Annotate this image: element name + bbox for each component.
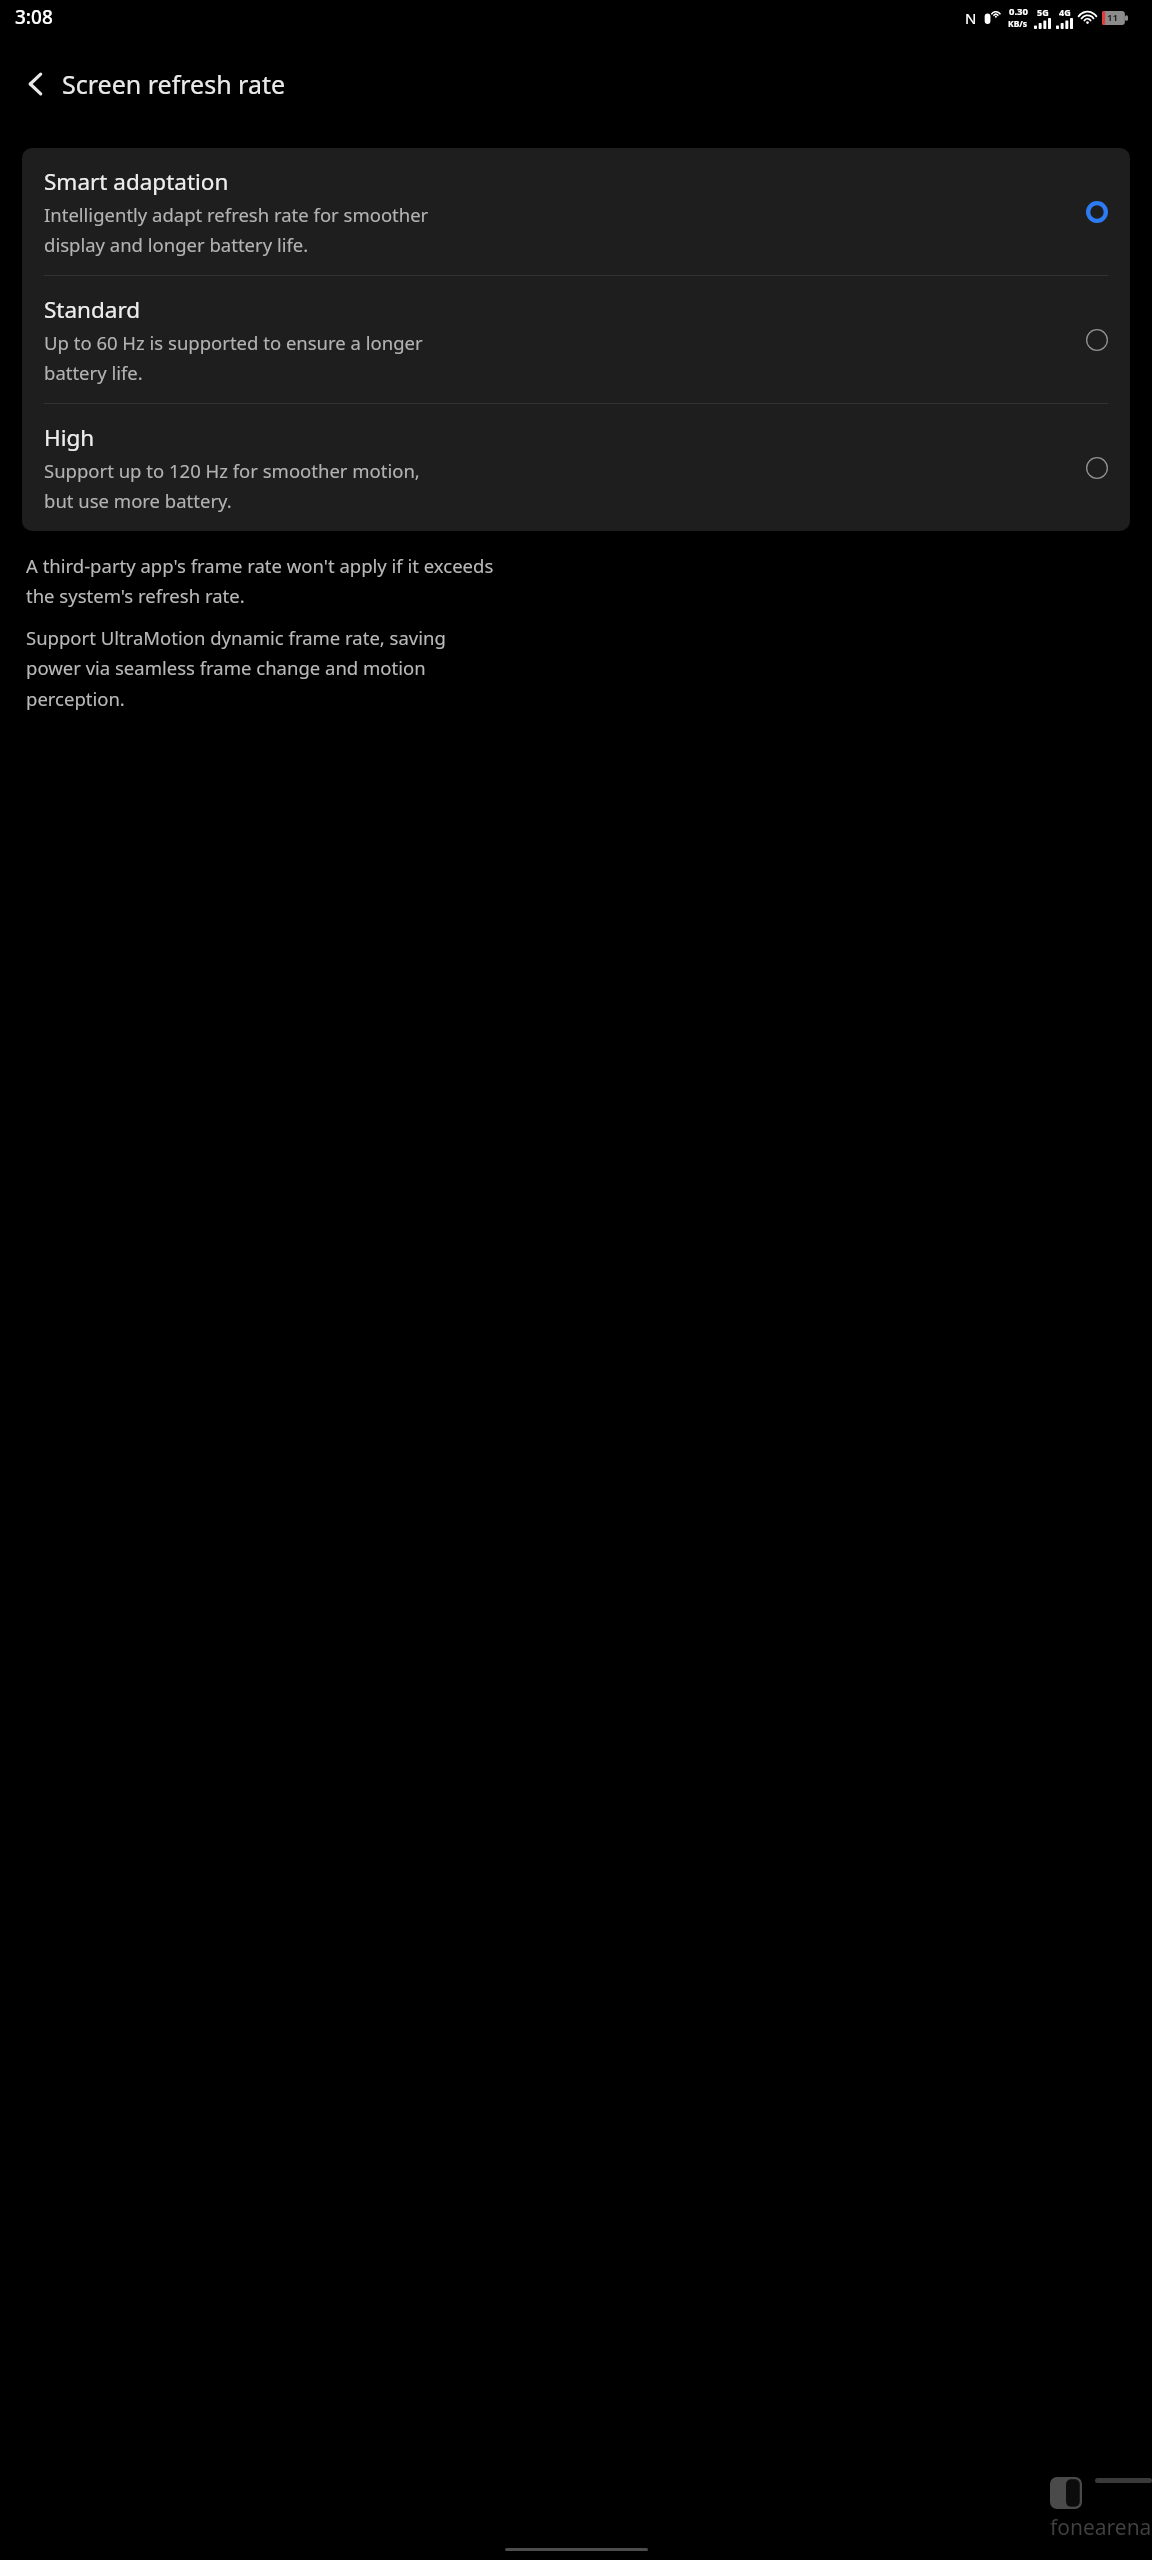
staticText: Support up to 120 Hz for smoother motion… [44, 458, 420, 513]
staticText: fonearena [1050, 2513, 1152, 2542]
button[interactable]: Smart adaptation [22, 148, 1130, 275]
staticText: KB/s [1008, 18, 1028, 30]
staticText: Standard [44, 294, 141, 325]
staticText: High [44, 422, 95, 453]
button[interactable]: High [22, 404, 1130, 531]
staticText: 0.30 [1009, 5, 1028, 18]
staticText: Intelligently adapt refresh rate for smo… [44, 202, 429, 257]
staticText: Support UltraMotion dynamic frame rate, … [26, 625, 446, 712]
staticText: Up to 60 Hz is supported to ensure a lon… [44, 330, 423, 385]
button[interactable]: Standard [22, 276, 1130, 403]
button[interactable]: Back [12, 60, 60, 108]
staticText: Screen refresh rate [62, 67, 286, 101]
staticText: 11 [1107, 11, 1118, 24]
staticText: 4G [1059, 6, 1071, 18]
staticText: 5G [1037, 6, 1049, 18]
staticText: Smart adaptation [44, 166, 229, 197]
staticText: N [965, 8, 977, 28]
staticText: A third-party app's frame rate won't app… [26, 553, 494, 609]
staticText: 3:08 [15, 4, 53, 30]
